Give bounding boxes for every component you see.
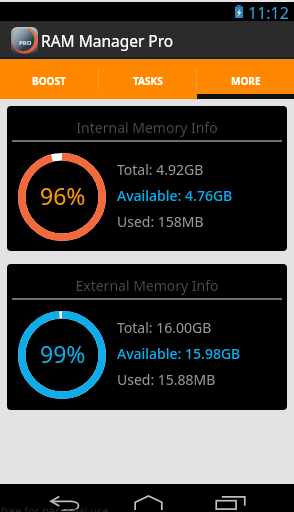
- staticText: Available: 4.76GB: [117, 186, 233, 205]
- button[interactable]: Home: [133, 490, 164, 512]
- staticText: External Memory Info: [7, 276, 287, 295]
- staticText: 96%: [40, 180, 86, 211]
- staticText: Internal Memory Info: [7, 118, 287, 137]
- button[interactable]: External Memory Info: [7, 264, 287, 410]
- staticText: 99%: [40, 338, 86, 369]
- staticText: PRO: [19, 39, 32, 47]
- staticText: MORE: [231, 74, 261, 88]
- staticText: TASKS: [133, 74, 163, 88]
- button[interactable]: Internal Memory Info: [7, 106, 287, 251]
- staticText: 11:12: [248, 2, 289, 21]
- button[interactable]: MORE: [197, 59, 294, 99]
- button[interactable]: Back: [50, 490, 81, 512]
- staticText: Used: 15.88MB: [117, 370, 216, 389]
- staticText: Used: 158MB: [117, 212, 204, 231]
- staticText: Total: 16.00GB: [117, 318, 212, 337]
- button[interactable]: BOOST: [0, 59, 98, 99]
- button[interactable]: Recent apps: [215, 490, 246, 512]
- staticText: BOOST: [32, 74, 66, 88]
- staticText: Available: 15.98GB: [117, 344, 241, 363]
- staticText: free for personal use: [1, 503, 109, 512]
- staticText: Total: 4.92GB: [117, 160, 204, 179]
- button[interactable]: TASKS: [99, 59, 196, 99]
- staticText: RAM Manager Pro: [41, 30, 174, 51]
